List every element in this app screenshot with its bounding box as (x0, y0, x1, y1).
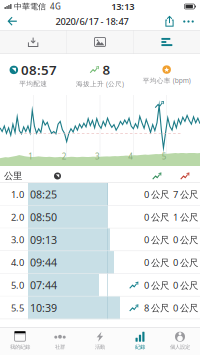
button[interactable]: 活動 (80, 327, 120, 355)
staticText: 4.0 (11, 256, 24, 269)
staticText: 4G (46, 1, 61, 12)
staticText: 1 公尺 (173, 211, 198, 223)
button[interactable]: 5.5 (0, 296, 200, 319)
button[interactable]: Photos (67, 30, 133, 54)
staticText: 3.0 (11, 234, 24, 246)
button[interactable]: 社群 (40, 327, 80, 355)
button[interactable]: 1.0 (0, 183, 200, 206)
staticText: 2.0 (11, 211, 24, 223)
staticText: 7 公尺 (173, 188, 198, 201)
staticText: 平均心率 (bpm) (143, 76, 191, 85)
button[interactable]: More options (179, 13, 200, 30)
staticText: 0 公尺 (173, 302, 198, 314)
button[interactable]: 3.0 (0, 228, 200, 251)
staticText: 08:25 (30, 187, 57, 201)
staticText: 08:57 (21, 61, 57, 79)
staticText: 1.0 (11, 188, 24, 201)
staticText: 5.5 (11, 302, 24, 314)
staticText: 3 (95, 151, 100, 162)
staticText: 8 (102, 61, 110, 78)
staticText: 海拔上升 (公尺) (76, 79, 124, 88)
button[interactable]: 2.0 (0, 206, 200, 228)
staticText: 4 (128, 151, 133, 162)
button[interactable]: 5.0 (0, 274, 200, 296)
staticText: 08:50 (30, 210, 57, 224)
staticText: 0 公尺 (144, 279, 169, 291)
staticText: 2020/6/17 - 18:47 (55, 15, 128, 28)
staticText: 0 公尺 (144, 256, 169, 269)
staticText: 1 (28, 151, 33, 162)
button[interactable]: Charts (134, 30, 200, 54)
staticText: 中華電信 (12, 2, 46, 11)
staticText: 平均配速 (19, 80, 47, 88)
staticText: 07:44 (30, 278, 57, 292)
staticText: 13:13 (111, 0, 134, 13)
staticText: 5 (162, 151, 167, 162)
button[interactable]: 個人設定 (160, 327, 200, 355)
staticText: 活動 (95, 344, 105, 350)
staticText: 0 公尺 (173, 256, 198, 269)
button[interactable]: Back (0, 13, 24, 30)
staticText: 0 公尺 (144, 188, 169, 201)
staticText: 0 公尺 (173, 279, 198, 291)
staticText: 2 (62, 151, 67, 162)
staticText: 0 公尺 (144, 234, 169, 246)
staticText: 10:39 (30, 301, 57, 315)
button[interactable]: Share (160, 13, 179, 30)
staticText: 09:44 (30, 255, 57, 270)
staticText: 5.0 (11, 279, 24, 291)
staticText: 0 公尺 (173, 234, 198, 246)
staticText: 09:13 (30, 233, 57, 247)
staticText: 個人設定 (170, 344, 190, 350)
staticText: 公里 (4, 170, 22, 182)
staticText: 紀錄 (135, 344, 145, 350)
staticText: 0 公尺 (144, 211, 169, 223)
button[interactable]: 紀錄 (120, 327, 160, 355)
button[interactable]: 4.0 (0, 251, 200, 274)
staticText: 8 公尺 (144, 302, 169, 314)
button[interactable]: 我的紀錄 (0, 327, 40, 355)
staticText: 社群 (55, 344, 65, 350)
button[interactable]: Export activity (0, 30, 66, 54)
staticText: 我的紀錄 (10, 344, 30, 350)
